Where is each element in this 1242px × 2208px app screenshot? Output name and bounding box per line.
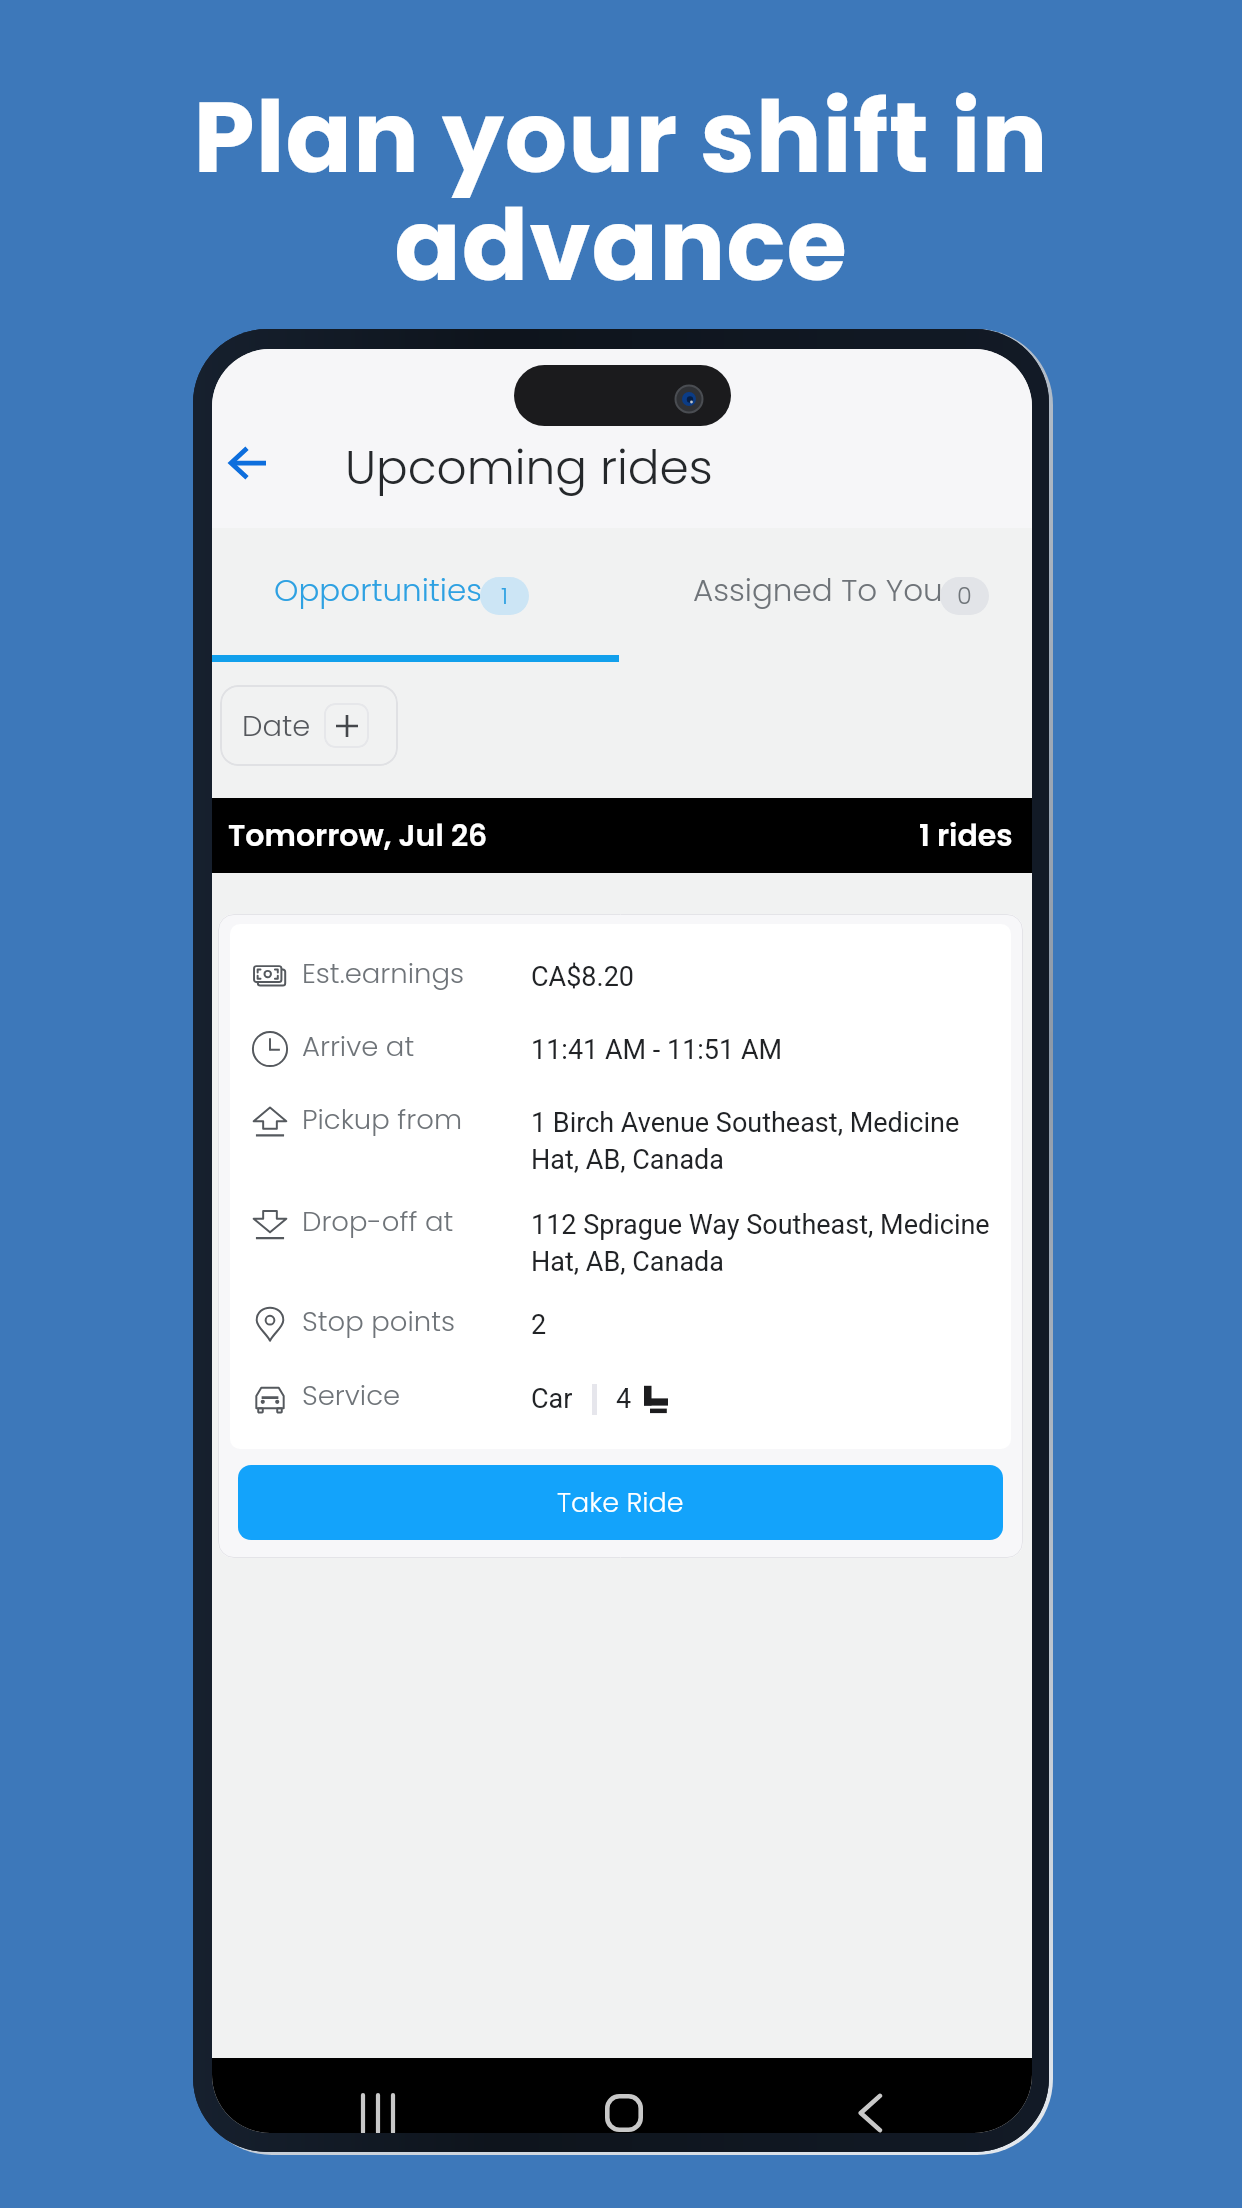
staticText: Tomorrow, Jul 26 — [228, 815, 488, 857]
button[interactable]: Recent apps — [323, 2058, 433, 2133]
staticText: Car — [531, 1383, 573, 1415]
button[interactable]: Back — [815, 2058, 925, 2133]
staticText: 4 — [616, 1383, 632, 1415]
staticText: Pickup from — [302, 1100, 463, 1138]
staticText: 0 — [957, 579, 972, 613]
staticText: 11:41 AM - 11:51 AM — [531, 1034, 1011, 1066]
staticText: Upcoming rides — [345, 435, 713, 501]
staticText: CA$8.20 — [531, 961, 1011, 993]
staticText: Date — [242, 706, 311, 747]
staticText: Drop-off at — [302, 1202, 454, 1240]
staticText: 112 Sprague Way Southeast, Medicine Hat,… — [531, 1209, 1011, 1278]
staticText: 1 rides — [919, 815, 1013, 857]
staticText: 2 — [531, 1309, 1011, 1341]
button[interactable]: Opportunities — [212, 528, 619, 662]
staticText: Assigned To You — [693, 568, 943, 611]
staticText: Arrive at — [302, 1027, 415, 1065]
button[interactable]: Assigned To You — [619, 528, 1032, 662]
staticText: Stop points — [302, 1302, 456, 1340]
button[interactable]: Date — [220, 685, 398, 766]
staticText: Est.earnings — [302, 954, 464, 992]
staticText: Plan your shift in advance — [0, 69, 1242, 314]
button[interactable]: Home — [569, 2058, 679, 2133]
staticText: 1 — [501, 579, 509, 613]
button[interactable]: Take Ride — [238, 1465, 1003, 1540]
button[interactable]: Back — [212, 411, 287, 491]
staticText: Take Ride — [557, 1484, 684, 1522]
staticText: Opportunities — [274, 568, 483, 611]
staticText: 1 Birch Avenue Southeast, Medicine Hat, … — [531, 1107, 1011, 1176]
staticText: Service — [302, 1376, 401, 1414]
